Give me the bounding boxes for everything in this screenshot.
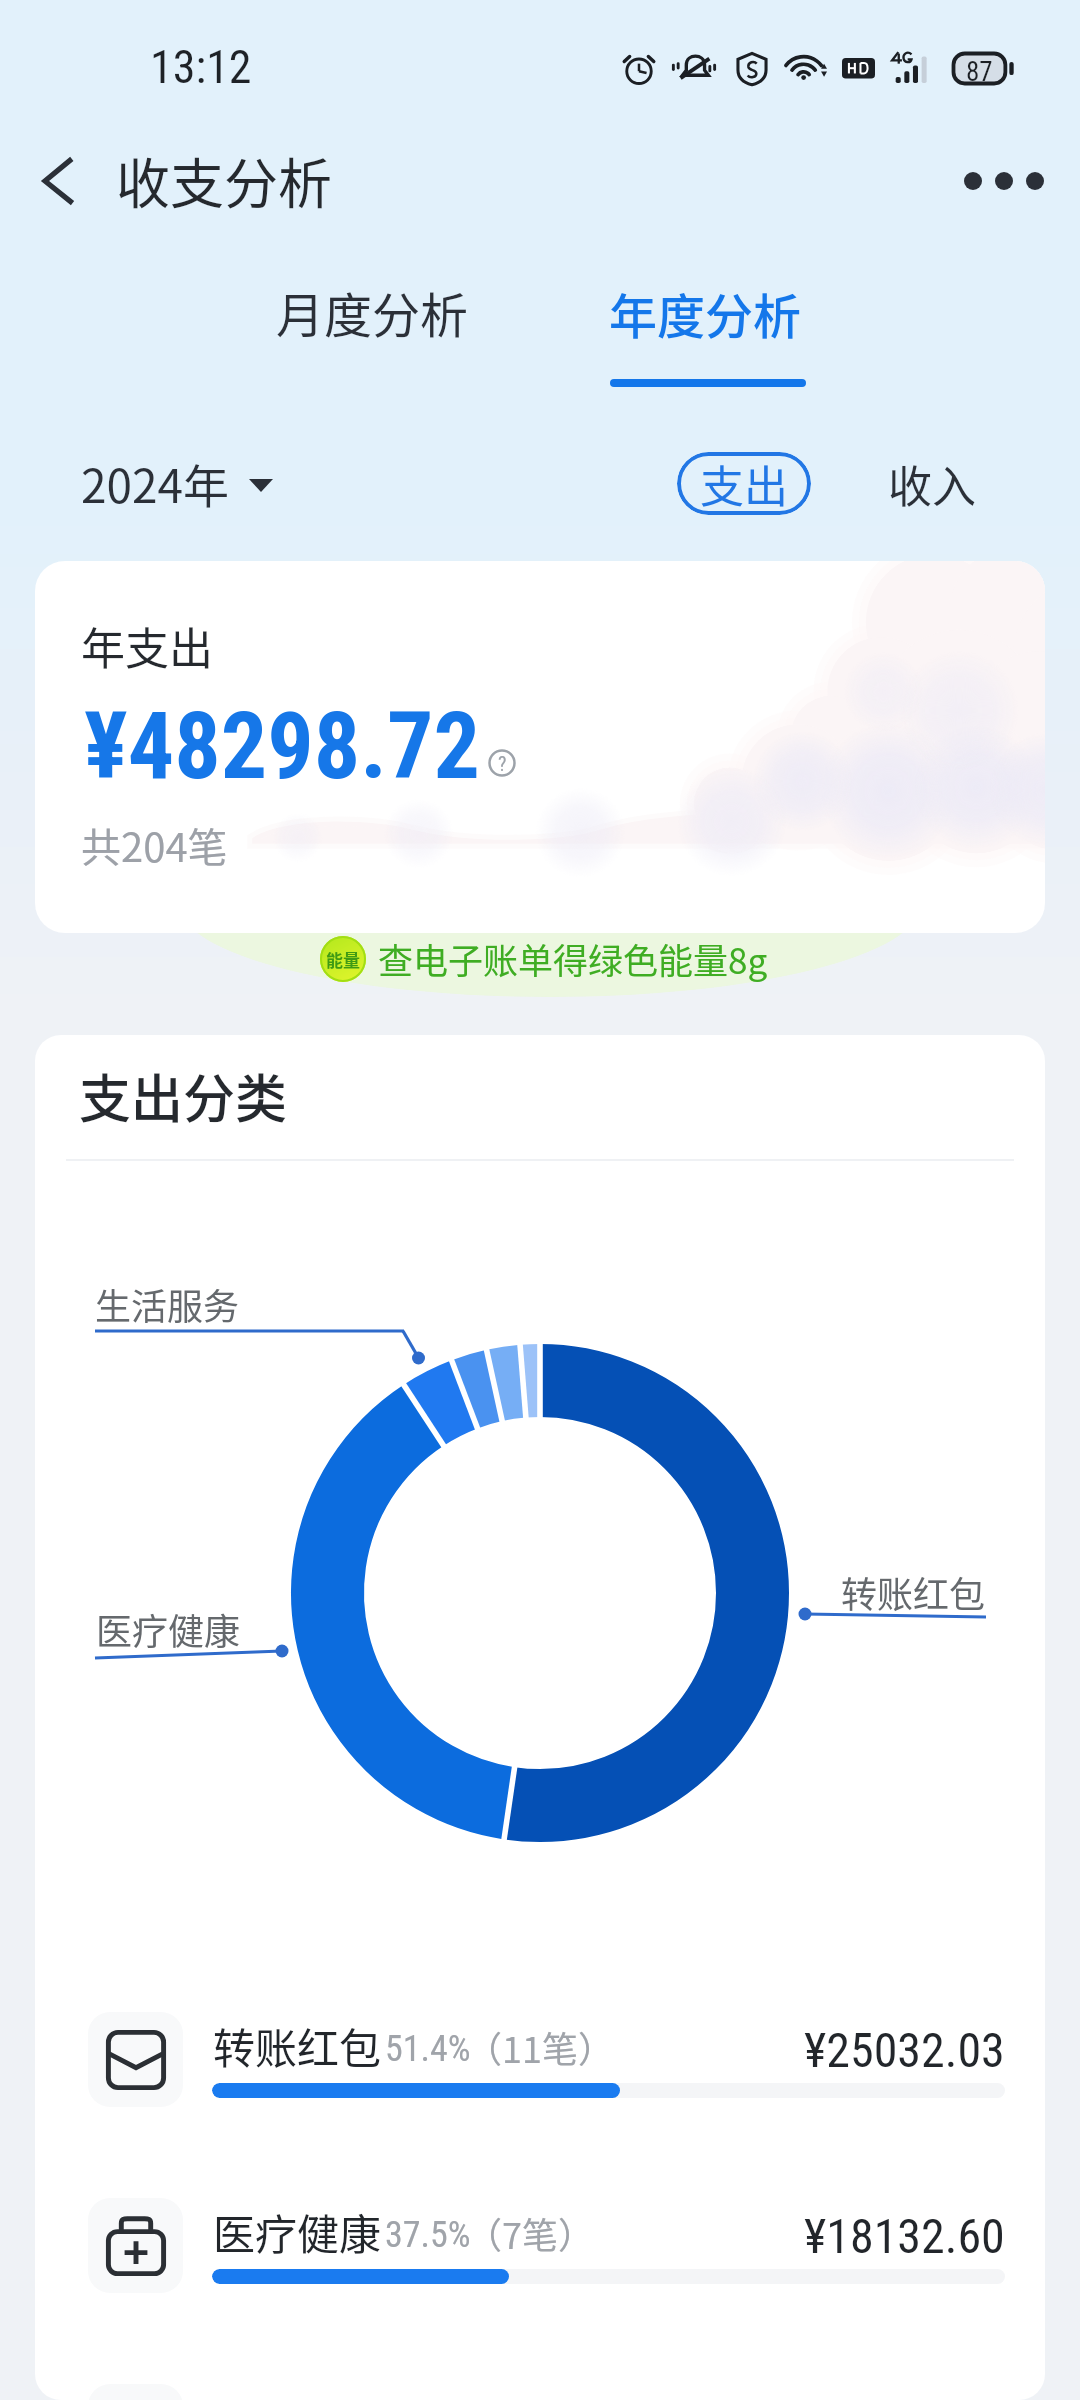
staticText: 医疗健康 [213,2201,382,2262]
staticText: 查电子账单得绿色能量8g [378,933,768,984]
staticText: 医疗健康 [96,1603,241,1655]
staticText: 2024年 [81,450,230,517]
staticText: 年度分析 [609,278,802,348]
button[interactable]: 月度分析 [262,263,483,361]
staticText: （11笔） [466,2021,614,2073]
staticText: ? [498,752,507,775]
button[interactable]: 能量 [312,928,776,989]
staticText: 转账红包 [841,1566,986,1618]
button[interactable]: Back [29,133,350,227]
other: Back [43,153,79,209]
staticText: （7笔） [466,2207,594,2259]
button[interactable]: About this figure [488,749,516,777]
button[interactable]: 支出 [677,452,811,515]
staticText: 月度分析 [276,277,469,347]
staticText: 能量 [326,947,360,972]
button[interactable]: 2024年 [69,438,285,529]
staticText: ¥18132.60 [804,2208,1005,2264]
staticText: 51.4% [385,2028,471,2070]
staticText: 转账红包 [213,2015,382,2076]
staticText: 37.5% [385,2214,471,2256]
button[interactable]: 医疗健康 [35,2198,1045,2318]
staticText: 支出分类 [79,1058,288,1133]
button[interactable]: 收入 [874,452,990,515]
staticText: 13:12 [150,40,252,94]
button[interactable]: More options [940,148,1068,214]
staticText: ¥25032.03 [804,2022,1005,2078]
staticText: 收支分析 [116,141,332,219]
staticText: 共204笔 [81,816,228,874]
button[interactable]: 年度分析 [595,264,816,362]
staticText: 收入 [888,452,976,515]
staticText: 年支出 [81,614,213,678]
staticText: 87 [966,56,993,88]
button[interactable]: 年支出 [35,561,1045,933]
button[interactable]: 转账红包 [35,2012,1045,2132]
staticText: 支出 [700,452,788,515]
staticText: 生活服务 [95,1278,240,1330]
staticText: ¥48298.72 [84,693,480,801]
